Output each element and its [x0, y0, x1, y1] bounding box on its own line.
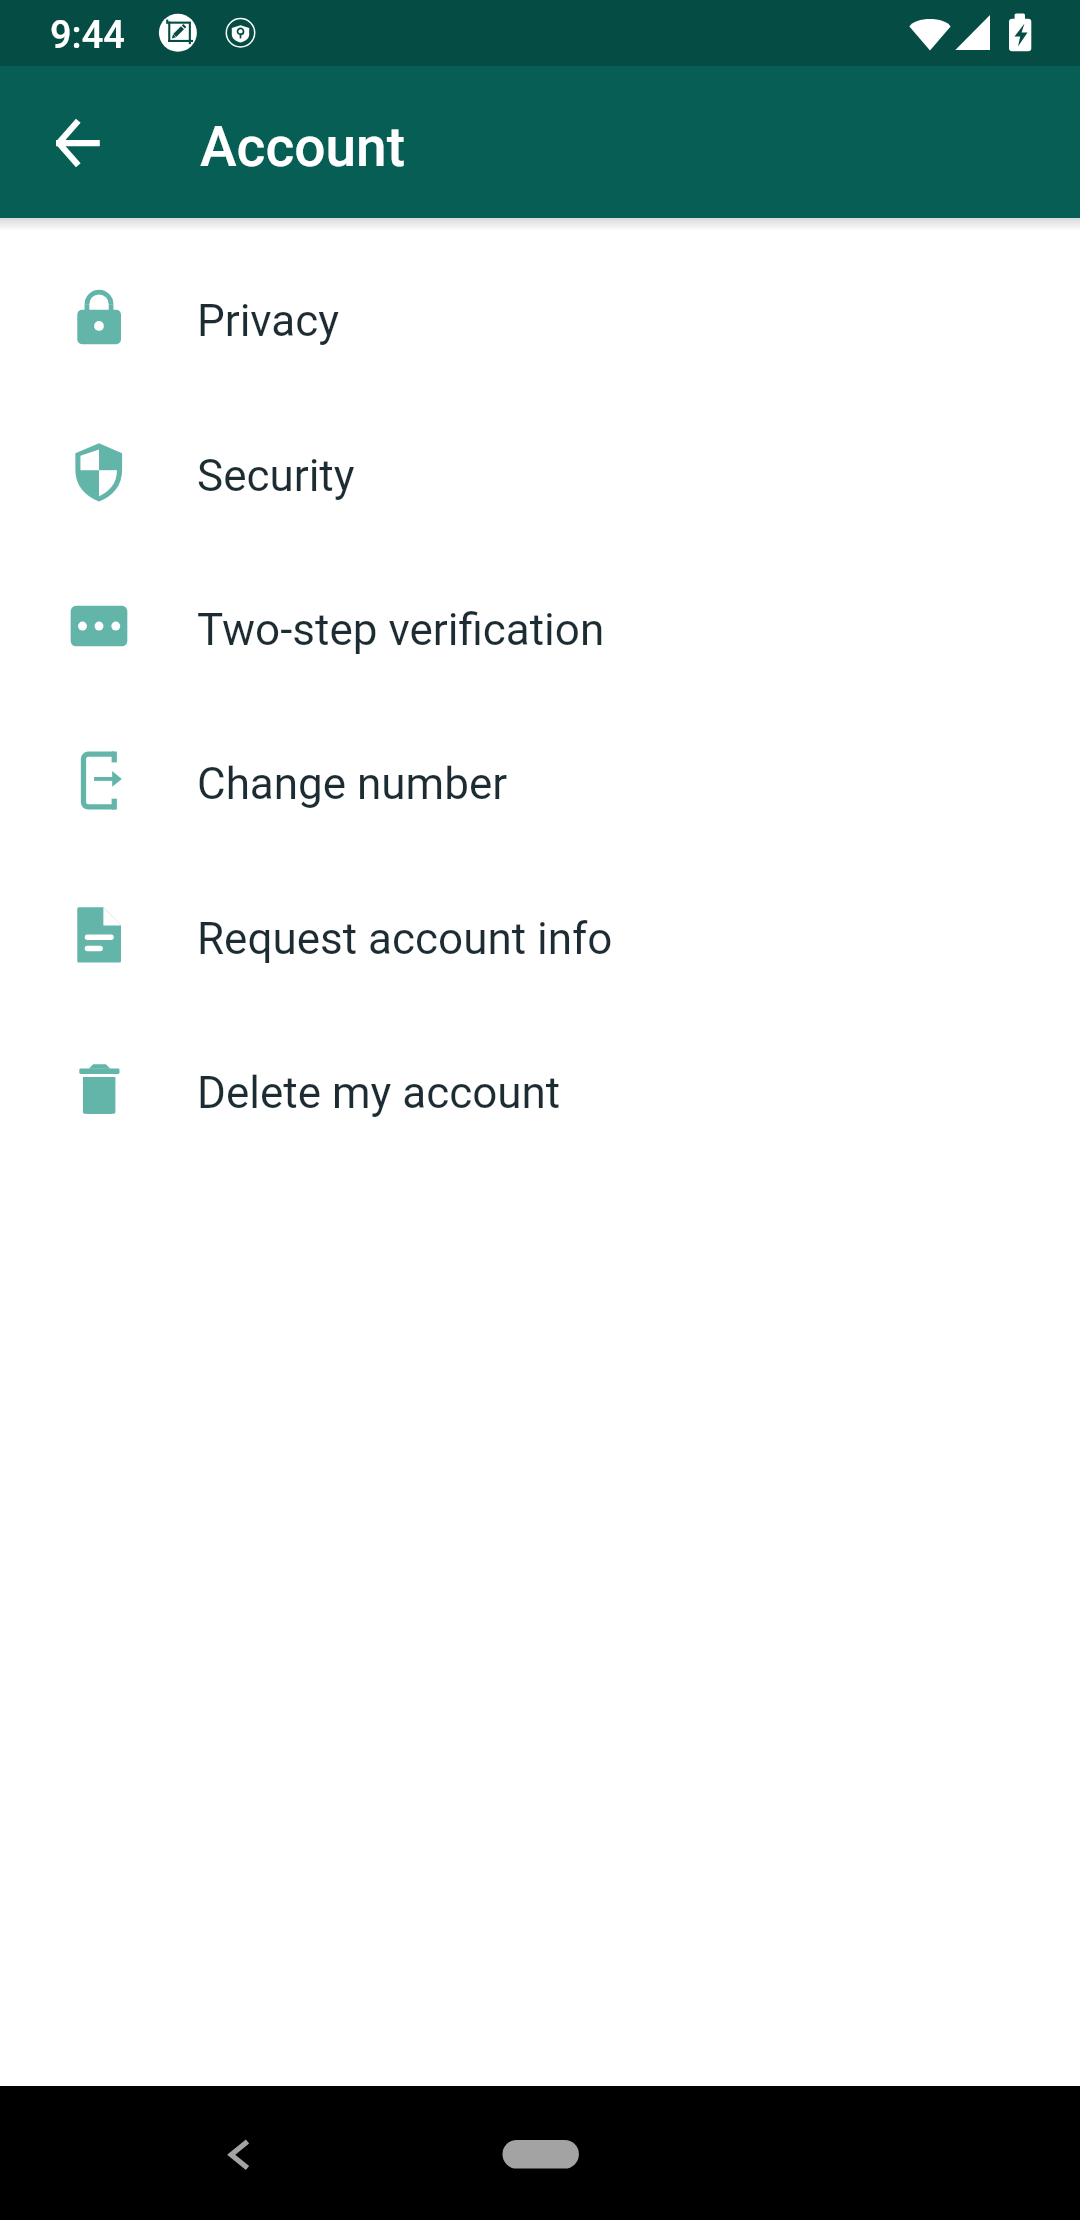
staticText: Privacy [197, 295, 340, 347]
staticText: Account [200, 115, 406, 179]
button[interactable]: Privacy [0, 240, 1080, 394]
button[interactable]: Change number [0, 703, 1080, 857]
staticText: Security [197, 450, 355, 502]
button[interactable]: Security [0, 395, 1080, 549]
staticText: 9:44 [50, 13, 125, 58]
staticText: Delete my account [197, 1067, 561, 1119]
button[interactable]: Back [193, 2104, 285, 2196]
button[interactable]: Home [470, 2110, 610, 2170]
button[interactable]: Two-step verification [0, 549, 1080, 703]
button[interactable]: Delete my account [0, 1012, 1080, 1166]
button[interactable]: Navigate up [34, 99, 122, 187]
button[interactable]: Request account info [0, 858, 1080, 1012]
staticText: Change number [197, 758, 508, 810]
staticText: Request account info [197, 913, 613, 965]
staticText: Two-step verification [197, 604, 605, 656]
